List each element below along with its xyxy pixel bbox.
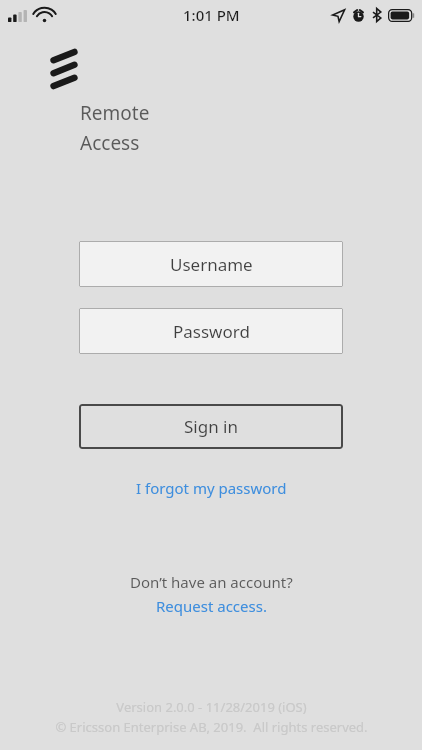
other: Ericsson logo xyxy=(50,50,78,88)
staticText: Username xyxy=(170,253,253,276)
button[interactable]: Password xyxy=(79,308,343,354)
button[interactable]: Sign in xyxy=(79,404,343,449)
staticText: Don’t have an account? xyxy=(130,572,293,592)
staticText: Version 2.0.0 - 11/28/2019 (iOS) xyxy=(116,698,307,716)
staticText: Access xyxy=(80,130,140,156)
staticText: Password xyxy=(173,320,250,343)
staticText: © Ericsson Enterprise AB, 2019. All righ… xyxy=(55,718,368,736)
staticText: Remote xyxy=(80,100,150,126)
button[interactable]: Username xyxy=(79,241,343,287)
button[interactable]: I forgot my password xyxy=(128,476,295,500)
button[interactable]: Request access. xyxy=(148,595,275,617)
staticText: 1:01 PM xyxy=(183,5,240,25)
staticText: Sign in xyxy=(184,415,238,438)
